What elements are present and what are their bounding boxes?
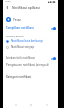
button[interactable]: Tampilkan notifikasi — [3, 24, 58, 32]
staticText: Izinkan titik notifikasi — [6, 56, 35, 60]
staticText: Pesan — [13, 18, 22, 22]
staticText: Kategori notifikasi — [6, 75, 32, 79]
staticText: Notifikasi aplikasi — [12, 5, 40, 9]
button[interactable]: Back — [12, 101, 19, 108]
staticText: Notifikasi bisa berbunyi — [11, 39, 43, 43]
button[interactable]: Recents — [43, 101, 50, 108]
staticText: 10:20 — [5, 0, 11, 3]
staticText: Perilaku default — [6, 34, 24, 37]
staticText: Notifikasi senyap — [11, 45, 35, 49]
button[interactable]: Navigate up — [3, 3, 11, 11]
staticText: Pengaturan notifikasi lainnya di aplikas… — [6, 63, 56, 67]
staticText: Tampilkan notifikasi — [6, 26, 34, 30]
button[interactable]: Izinkan titik notifikasi — [3, 54, 58, 62]
button[interactable]: Pengaturan notifikasi lainnya di aplikas… — [3, 61, 58, 68]
button[interactable]: Notifikasi senyap — [3, 44, 58, 50]
button[interactable]: Pesan — [3, 16, 58, 23]
button[interactable]: Home — [27, 101, 34, 108]
button[interactable]: Notifikasi bisa berbunyi — [3, 38, 58, 44]
